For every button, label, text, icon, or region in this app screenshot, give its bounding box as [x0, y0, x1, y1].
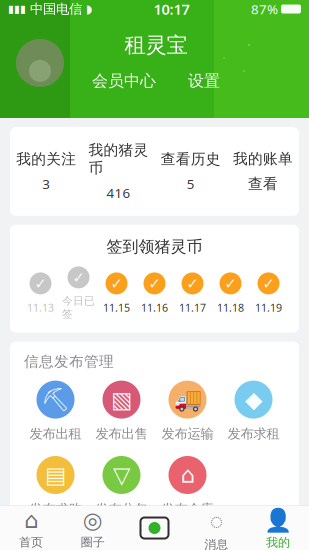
staticText: 我的关注 — [16, 150, 76, 168]
staticText: 圈子 — [81, 535, 105, 550]
staticText: ▽ — [113, 462, 130, 488]
staticText: ◆ — [245, 387, 262, 412]
staticText: 发布仓库 — [161, 501, 213, 517]
staticText: 签到领猪灵币 — [106, 237, 202, 256]
button[interactable]: ⌂ — [154, 454, 220, 519]
staticText: ✓ — [262, 275, 274, 292]
staticText: 消息 — [204, 537, 228, 550]
staticText: 信息发布管理 — [24, 353, 114, 371]
button[interactable]: 🚚 — [154, 379, 220, 444]
button[interactable]: ▧ — [88, 379, 154, 444]
staticText: 11.13 — [27, 300, 54, 315]
staticText: 首页 — [19, 535, 43, 550]
staticText: 今日已签 — [62, 294, 95, 321]
button[interactable]: 设置 — [182, 68, 226, 94]
staticText: 会员中心 — [92, 71, 156, 91]
staticText: ▤ — [45, 462, 66, 488]
staticText: 11.17 — [179, 300, 206, 315]
button[interactable]: ▽ — [88, 454, 154, 519]
button[interactable]: 开通店铺 — [10, 540, 299, 550]
button[interactable]: 会员中心 — [86, 68, 162, 94]
staticText: 10:17 — [153, 0, 189, 19]
staticText: ▧ — [111, 387, 132, 412]
staticText: ◌ — [210, 505, 223, 535]
staticText: ⛏ — [41, 387, 70, 413]
staticText: ✓ — [110, 275, 122, 292]
staticText: 我的猪灵币 — [88, 141, 148, 177]
staticText: 👤 — [264, 507, 292, 533]
staticText: ⌂ — [24, 507, 38, 533]
staticText: 查看历史 — [161, 150, 221, 168]
button[interactable]: ◆ — [220, 379, 286, 444]
staticText: ✓ — [34, 275, 46, 292]
button[interactable]: ◌ — [185, 500, 247, 550]
staticText: ✓ — [72, 269, 84, 286]
button[interactable]: ◎ — [62, 502, 124, 550]
button[interactable]: ▤ — [22, 454, 88, 519]
staticText: 416 — [106, 184, 130, 202]
staticText: 发布出售 — [95, 426, 147, 442]
staticText: 🚚 — [173, 387, 201, 413]
button[interactable]: ⌂ — [0, 502, 62, 550]
staticText: 11.16 — [141, 300, 168, 315]
staticText: ◎ — [83, 507, 103, 533]
staticText: ◗ — [86, 2, 92, 16]
button[interactable]: 我的账单 — [227, 148, 299, 195]
staticText: 中国电信 — [26, 1, 86, 17]
staticText: 11.18 — [217, 300, 244, 315]
button[interactable]: 查看历史 — [154, 148, 227, 195]
button[interactable]: 拍照 — [124, 511, 185, 544]
staticText: 3 — [42, 175, 50, 193]
button[interactable]: 我的猪灵币 — [82, 139, 154, 204]
staticText: 87% — [251, 0, 281, 18]
staticText: ▮▮▮ — [8, 3, 26, 15]
staticText: 发布求租 — [227, 426, 279, 442]
staticText: 设置 — [188, 71, 220, 91]
staticText: 我的 — [266, 535, 290, 550]
staticText: 查看 — [248, 175, 278, 193]
staticText: 发布分包 — [95, 501, 147, 517]
staticText: ✓ — [148, 275, 160, 292]
staticText: 11.19 — [255, 300, 282, 315]
staticText: 发布求购 — [29, 501, 81, 517]
staticText: 发布出租 — [29, 426, 81, 442]
staticText: 5 — [187, 175, 195, 193]
button[interactable]: ⛏ — [22, 379, 88, 444]
button[interactable]: 我的关注 — [10, 148, 82, 195]
staticText: ✓ — [186, 275, 198, 292]
staticText: 发布运输 — [161, 426, 213, 442]
button[interactable]: 👤 — [247, 502, 309, 550]
staticText: ⌂ — [180, 462, 194, 488]
staticText: 11.15 — [103, 300, 130, 315]
staticText: 我的账单 — [233, 150, 293, 168]
staticText: 租灵宝 — [124, 32, 187, 58]
staticText: ✓ — [224, 275, 236, 292]
